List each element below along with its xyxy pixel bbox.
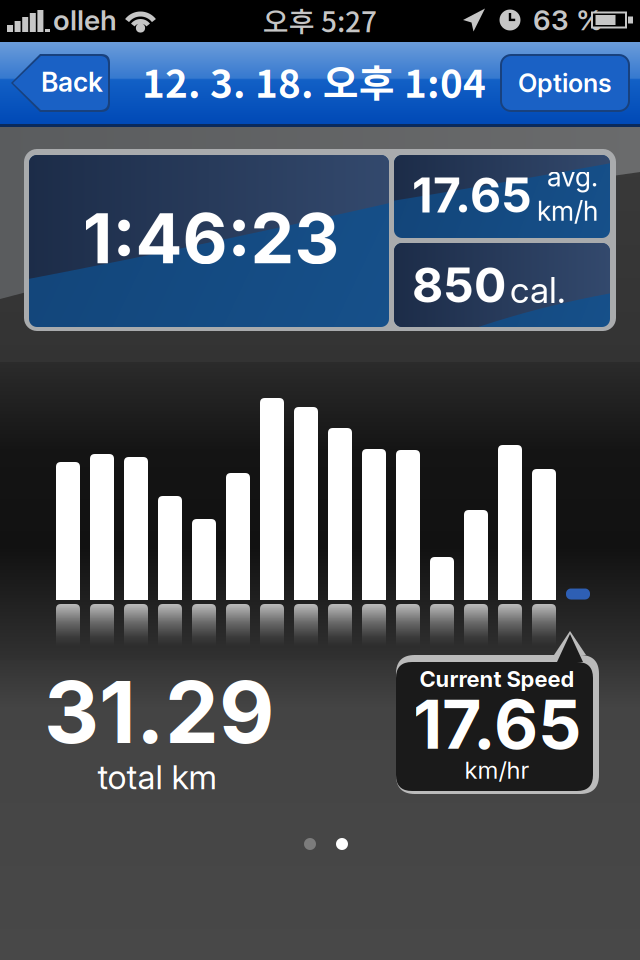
staticText: km/h [537,195,598,227]
staticText: 17.65 [413,683,581,765]
staticText: cal. [510,268,566,312]
button[interactable]: Back [11,54,110,112]
staticText: 17.65 [412,166,532,224]
staticText: Options [518,68,612,98]
staticText: km/hr [464,755,529,784]
staticText: olleh [53,3,117,37]
staticText: 850 [412,256,506,314]
staticText: total km [97,757,216,797]
staticText: 오후 5:27 [263,0,377,40]
staticText: 12. 3. 18. 오후 1:04 [142,53,486,109]
staticText: Current Speed [419,666,574,692]
staticText: 1:46:23 [82,196,339,280]
staticText: Back [41,66,103,98]
staticText: avg. [547,161,598,193]
button[interactable]: Options [500,54,630,112]
staticText: 31.29 [44,660,274,764]
staticText: 63 % [533,3,603,37]
